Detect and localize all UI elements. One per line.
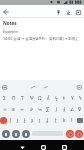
button[interactable]: ∮ — [60, 104, 68, 115]
button[interactable]: Backspace — [65, 129, 74, 138]
button[interactable]: ʈ — [52, 115, 60, 126]
button[interactable]: Ƭ — [18, 93, 27, 104]
button[interactable]: ∞ — [0, 104, 9, 115]
staticText: ʄ — [24, 117, 26, 124]
staticText: ∇ — [78, 107, 82, 113]
staticText: Σ — [3, 95, 6, 102]
staticText: ≡ — [11, 107, 16, 113]
button[interactable]: Shift — [0, 115, 7, 126]
staticText: ∂ — [30, 107, 33, 113]
button[interactable]: ʃ — [7, 115, 14, 126]
button[interactable]: ∫ — [52, 104, 60, 115]
button[interactable]: Reminder — [62, 6, 74, 18]
staticText: ʂ — [31, 117, 34, 124]
staticText: Notes — [3, 20, 17, 26]
staticText: ∑ — [46, 107, 50, 113]
button[interactable]: ∂ — [27, 104, 36, 115]
button[interactable]: ϟ — [52, 93, 60, 104]
button[interactable]: ∠ — [68, 104, 76, 115]
button[interactable]: Enter — [74, 129, 83, 138]
button[interactable]: Pin note — [52, 6, 64, 18]
button[interactable]: ɫ — [60, 93, 68, 104]
staticText: ʎ — [47, 95, 50, 102]
staticText: ʈ — [55, 117, 57, 124]
button[interactable]: ≡ — [9, 104, 18, 115]
staticText: ≈ — [20, 107, 25, 113]
staticText: Ω — [38, 95, 42, 102]
staticText: ʃ — [10, 117, 12, 124]
button[interactable]: Ƴ — [68, 93, 76, 104]
staticText: ʅ — [39, 117, 41, 124]
staticText: ∮ — [63, 107, 66, 113]
button[interactable]: Ψ — [27, 93, 36, 104]
button[interactable]: ∇ — [76, 104, 84, 115]
button[interactable]: ʄ — [21, 115, 28, 126]
button[interactable]: ʅ — [36, 115, 44, 126]
button[interactable]: Σ — [0, 93, 9, 104]
staticText: Ƭ — [21, 95, 24, 102]
staticText: ɟ — [17, 117, 19, 124]
button[interactable]: Back — [0, 6, 12, 18]
button[interactable]: Ω — [36, 93, 44, 104]
staticText: ϟ — [55, 95, 58, 102]
staticText: ʆ — [47, 117, 49, 124]
button[interactable]: ɟ — [14, 115, 21, 126]
staticText: ∠ — [70, 107, 75, 113]
staticText: ɫ — [63, 95, 65, 102]
staticText: ∞ — [3, 107, 7, 113]
button[interactable]: ʆ — [44, 115, 52, 126]
staticText: Example: — [3, 29, 19, 34]
button[interactable]: Symbols — [1, 129, 10, 138]
button[interactable]: k — [60, 115, 68, 126]
button[interactable]: Home — [38, 142, 48, 150]
staticText: Ƴ — [71, 95, 74, 102]
staticText: Π — [12, 95, 16, 102]
button[interactable]: l — [68, 115, 76, 126]
staticText: ≒ — [38, 107, 43, 113]
button[interactable]: Recent apps — [59, 142, 69, 150]
button[interactable]: Back — [17, 142, 27, 150]
button[interactable]: Archive — [72, 6, 84, 18]
button[interactable]: Language — [11, 129, 20, 138]
staticText: Ψ — [30, 95, 34, 102]
staticText: Ϟ — [79, 95, 82, 102]
button[interactable]: Ϟ — [76, 93, 84, 104]
button[interactable]: Emoji — [21, 129, 30, 138]
staticText: 14:00 会議 → 会議室A予約、資料印刷 → 部長に提出 — [3, 36, 82, 41]
button[interactable]: ∑ — [44, 104, 52, 115]
staticText: k — [63, 117, 66, 124]
button[interactable]: ≒ — [36, 104, 44, 115]
staticText: l — [71, 117, 73, 124]
button[interactable]: Backspace — [76, 115, 84, 126]
button[interactable]: Space — [32, 130, 63, 137]
button[interactable]: Π — [9, 93, 18, 104]
staticText: ∫ — [55, 107, 58, 113]
button[interactable]: ʂ — [28, 115, 36, 126]
button[interactable]: ʎ — [44, 93, 52, 104]
button[interactable]: ≈ — [18, 104, 27, 115]
